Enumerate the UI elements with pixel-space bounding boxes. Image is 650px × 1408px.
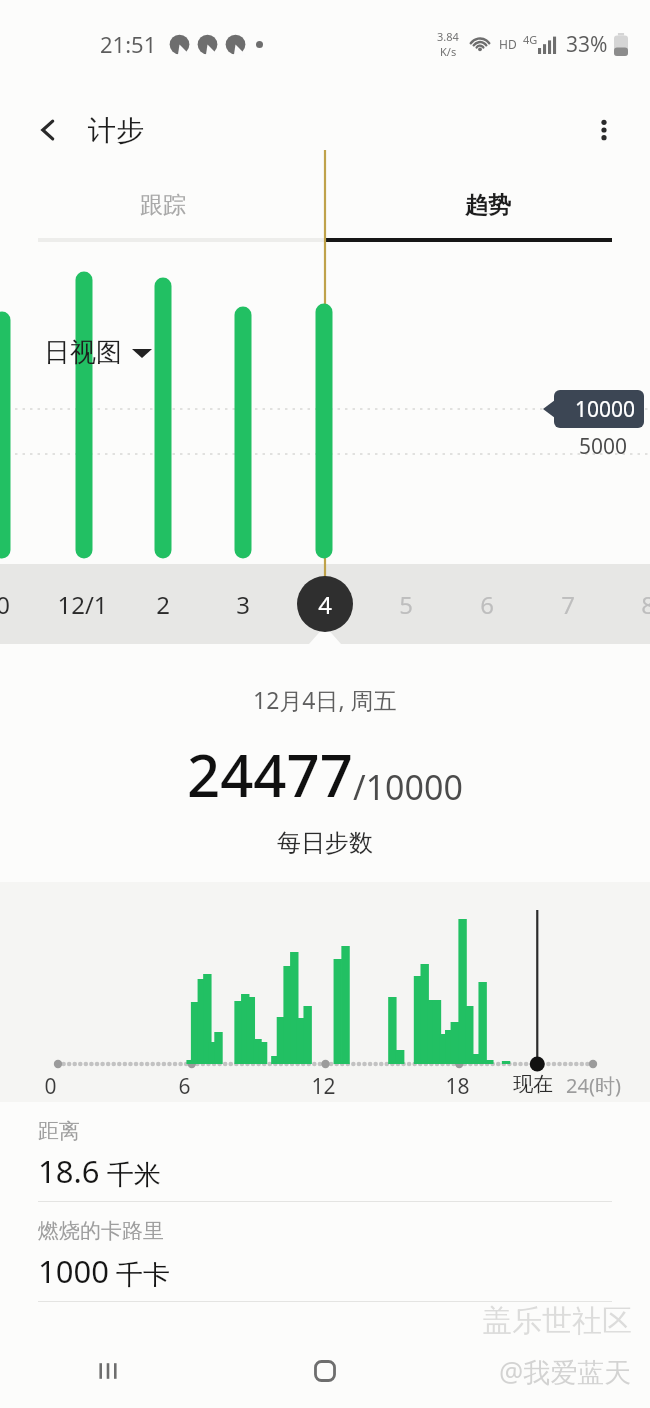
staticText: 18.6 <box>38 1150 100 1192</box>
button[interactable]: 2 <box>135 576 191 632</box>
staticText: 每日步数 <box>277 828 373 858</box>
staticText: 1000 <box>38 1250 109 1292</box>
staticText: 0 <box>0 588 10 621</box>
staticText: 燃烧的卡路里 <box>38 1218 164 1244</box>
staticText: 盖乐世社区 <box>482 1302 632 1340</box>
button[interactable]: 跟踪 <box>0 172 325 238</box>
staticText: 趋势 <box>465 191 511 220</box>
staticText: 12 <box>311 1072 336 1101</box>
staticText: 8 <box>641 588 650 621</box>
staticText: 24477 <box>187 735 353 814</box>
staticText: 33% <box>566 30 608 59</box>
staticText: 3.84 <box>437 29 459 44</box>
staticText: 6 <box>178 1072 191 1101</box>
staticText: 计步 <box>88 113 144 148</box>
button[interactable]: 燃烧的卡路里 <box>0 1202 650 1302</box>
staticText: 12月4日, 周五 <box>253 684 397 715</box>
button[interactable]: Back <box>26 108 70 152</box>
button[interactable]: 5 <box>378 576 434 632</box>
staticText: 跟踪 <box>140 191 186 220</box>
staticText: 7 <box>561 588 575 621</box>
staticText: 12/1 <box>57 588 108 621</box>
button[interactable]: 8 <box>620 576 650 632</box>
staticText: K/s <box>440 44 457 59</box>
button[interactable]: 12/1 <box>54 576 110 632</box>
staticText: HD <box>499 36 517 52</box>
staticText: 4 <box>318 588 332 621</box>
staticText: 现在 <box>513 1072 553 1097</box>
button[interactable]: Back <box>433 1334 650 1408</box>
staticText: 5000 <box>579 432 628 461</box>
button[interactable]: 0 <box>0 576 31 632</box>
staticText: 2 <box>156 588 170 621</box>
button[interactable]: 趋势 <box>325 172 650 238</box>
staticText: 日视图 <box>44 336 122 369</box>
staticText: 10000 <box>575 395 636 424</box>
staticText: 4G <box>523 32 538 47</box>
staticText: 千卡 <box>109 1255 171 1292</box>
button[interactable]: 7 <box>540 576 596 632</box>
staticText: 24(时) <box>566 1072 621 1099</box>
staticText: 18 <box>445 1072 470 1101</box>
staticText: /10000 <box>353 764 463 810</box>
button[interactable]: 6 <box>459 576 515 632</box>
staticText: @我爱蓝天 <box>499 1353 632 1390</box>
staticText: 距离 <box>38 1118 80 1144</box>
button[interactable]: 3 <box>215 576 271 632</box>
staticText: 3 <box>236 588 250 621</box>
button[interactable]: More options <box>580 106 628 154</box>
staticText: 6 <box>480 588 494 621</box>
button[interactable]: 4 <box>297 576 353 632</box>
staticText: 千米 <box>100 1155 162 1192</box>
button[interactable]: Home <box>216 1334 433 1408</box>
button[interactable]: Recents <box>0 1334 216 1408</box>
staticText: 0 <box>44 1072 57 1101</box>
staticText: 21:51 <box>100 29 157 59</box>
button[interactable]: 距离 <box>0 1102 650 1202</box>
staticText: 5 <box>399 588 413 621</box>
button[interactable]: 日视图 <box>44 336 152 369</box>
